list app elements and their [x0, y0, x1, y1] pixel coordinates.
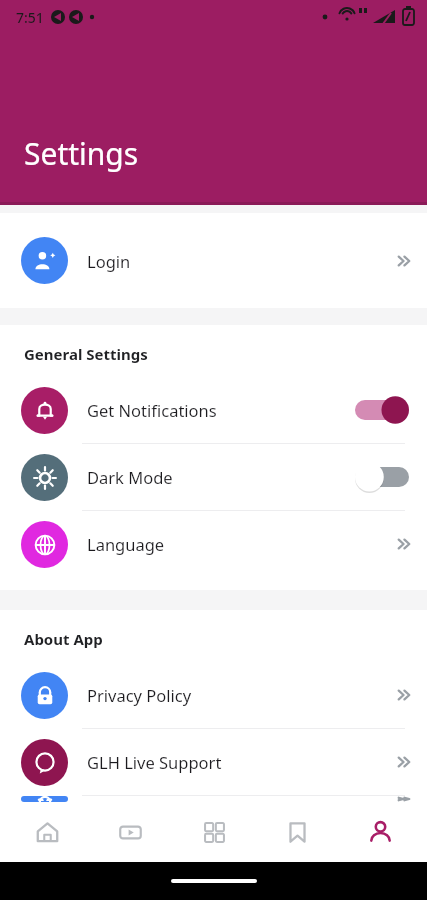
button[interactable]: Categories — [178, 802, 250, 862]
staticText: 7:51 — [16, 8, 44, 27]
staticText: Language — [87, 533, 381, 555]
staticText: Login — [87, 250, 381, 272]
button[interactable]: Language — [0, 511, 427, 577]
staticText: GLH Live Support — [87, 751, 381, 773]
button[interactable]: Get Notifications — [0, 377, 427, 443]
button[interactable]: Videos — [94, 802, 166, 862]
button[interactable]: Bookmarks — [261, 802, 333, 862]
button[interactable]: Terms of Use — [0, 796, 427, 802]
staticText: Settings — [24, 133, 139, 174]
button[interactable]: Toggle Dark Mode — [355, 461, 409, 493]
button[interactable]: Privacy Policy — [0, 662, 427, 728]
button[interactable]: Toggle Get Notifications — [355, 394, 409, 426]
staticText: Get Notifications — [87, 399, 355, 421]
button[interactable]: Dark Mode — [0, 444, 427, 510]
staticText: About App — [24, 629, 103, 649]
staticText: Dark Mode — [87, 466, 355, 488]
button[interactable]: Home — [11, 802, 83, 862]
button[interactable]: GLH Live Support — [0, 729, 427, 795]
staticText: Privacy Policy — [87, 684, 381, 706]
button[interactable]: Profile — [344, 802, 416, 862]
button[interactable]: Login — [0, 213, 427, 308]
staticText: General Settings — [24, 344, 148, 364]
